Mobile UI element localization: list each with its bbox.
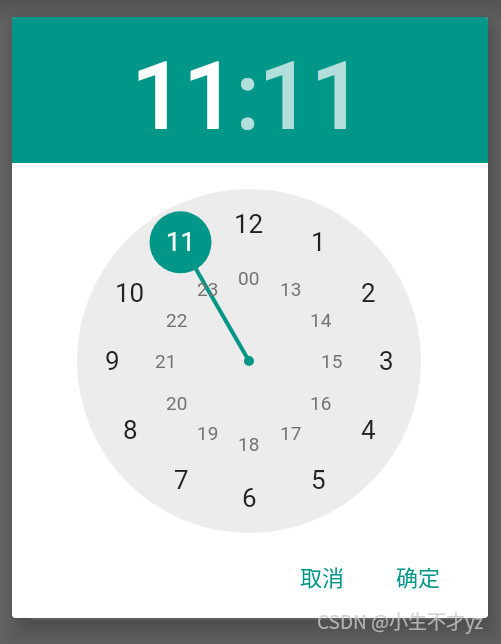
staticText: 10 (115, 278, 145, 308)
button[interactable]: 11 (156, 217, 206, 267)
staticText: 8 (123, 415, 138, 445)
button[interactable]: 1 (293, 217, 343, 267)
staticText: 4 (361, 415, 376, 445)
staticText: 20 (166, 392, 188, 414)
staticText: 00 (238, 267, 260, 289)
button[interactable]: 13 (266, 264, 316, 314)
button[interactable]: 11:11 (131, 41, 363, 152)
staticText: 3 (379, 346, 394, 376)
button[interactable]: 17 (266, 408, 316, 458)
staticText: 21 (155, 350, 177, 372)
button[interactable]: 16 (296, 378, 346, 428)
staticText: 2 (361, 278, 376, 308)
staticText: CSDN @小生不才yz (317, 607, 484, 635)
staticText: 23 (197, 278, 219, 300)
staticText: 1 (311, 227, 326, 257)
staticText: 17 (280, 422, 302, 444)
button[interactable]: 15 (307, 336, 357, 386)
staticText: 14 (310, 309, 332, 331)
staticText: 取消 (300, 560, 345, 592)
button[interactable]: 5 (293, 455, 343, 505)
button[interactable]: 12 (224, 199, 274, 249)
button[interactable]: 23 (183, 264, 233, 314)
button[interactable]: 19 (183, 408, 233, 458)
staticText: 6 (242, 483, 257, 513)
staticText: 5 (311, 465, 326, 495)
button[interactable]: 6 (224, 473, 274, 523)
staticText: 18 (238, 433, 260, 455)
button[interactable]: 8 (105, 405, 155, 455)
button[interactable]: 7 (156, 455, 206, 505)
button[interactable]: 00 (224, 253, 274, 303)
button[interactable]: 20 (152, 378, 202, 428)
button[interactable]: 21 (141, 336, 191, 386)
button[interactable]: 18 (224, 419, 274, 469)
staticText: 19 (197, 422, 219, 444)
button[interactable]: 4 (343, 405, 393, 455)
staticText: 12 (234, 209, 264, 239)
button[interactable]: 22 (152, 295, 202, 345)
staticText: 9 (105, 346, 120, 376)
staticText: 16 (310, 392, 332, 414)
button[interactable]: 10 (105, 268, 155, 318)
button[interactable]: 取消 (277, 552, 367, 600)
staticText: 确定 (396, 560, 441, 592)
button[interactable]: 3 (361, 336, 411, 386)
staticText: 15 (321, 350, 343, 372)
button[interactable]: 9 (87, 336, 137, 386)
button[interactable]: 2 (343, 268, 393, 318)
button[interactable]: 确定 (373, 552, 463, 600)
staticText: 7 (174, 465, 189, 495)
button[interactable]: 14 (296, 295, 346, 345)
staticText: 22 (166, 309, 188, 331)
staticText: 13 (280, 278, 302, 300)
staticText: 11 (166, 227, 196, 257)
